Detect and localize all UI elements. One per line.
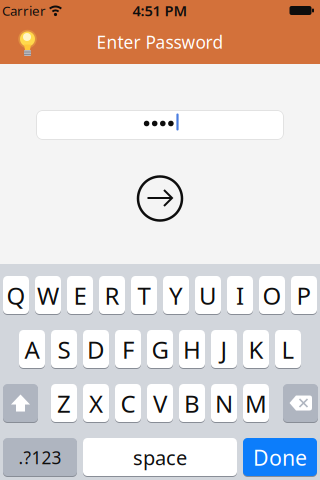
button[interactable]: Delete (283, 383, 318, 422)
button[interactable]: Done (243, 437, 317, 476)
button[interactable]: V (147, 383, 173, 422)
button[interactable]: Hint (12, 29, 42, 59)
button[interactable]: space (83, 437, 237, 476)
staticText: W (37, 280, 59, 311)
button[interactable]: W (35, 275, 61, 314)
button[interactable]: M (243, 383, 269, 422)
button[interactable]: G (147, 329, 173, 368)
button[interactable]: F (115, 329, 141, 368)
staticText: 4:51 PM (132, 1, 187, 20)
staticText: O (262, 280, 281, 311)
staticText: B (184, 388, 200, 419)
staticText: M (245, 388, 267, 419)
staticText: V (153, 388, 167, 419)
button[interactable]: D (83, 329, 109, 368)
staticText: N (215, 388, 233, 419)
staticText: S (57, 334, 70, 365)
button[interactable]: C (115, 383, 141, 422)
staticText: D (87, 334, 105, 365)
button[interactable]: O (259, 275, 285, 314)
button[interactable]: A (19, 329, 45, 368)
staticText: Q (6, 280, 25, 311)
staticText: space (133, 444, 187, 471)
staticText: R (104, 280, 119, 311)
button[interactable]: T (131, 275, 157, 314)
button[interactable]: Z (51, 383, 77, 422)
button[interactable]: Q (3, 275, 29, 314)
button[interactable]: X (83, 383, 109, 422)
button[interactable]: S (51, 329, 77, 368)
button[interactable]: Shift (3, 383, 38, 422)
staticText: Z (57, 388, 71, 419)
button[interactable]: I (227, 275, 253, 314)
button[interactable]: J (211, 329, 237, 368)
staticText: L (281, 334, 294, 365)
button[interactable]: B (179, 383, 205, 422)
staticText: C (120, 388, 135, 419)
staticText: K (248, 334, 263, 365)
staticText: I (236, 280, 244, 311)
staticText: P (296, 280, 311, 311)
button[interactable]: K (243, 329, 269, 368)
staticText: T (137, 280, 150, 311)
staticText: U (199, 280, 217, 311)
button[interactable]: Y (163, 275, 189, 314)
button[interactable]: Password (36, 110, 284, 140)
button[interactable]: P (291, 275, 317, 314)
button[interactable]: E (67, 275, 93, 314)
staticText: X (89, 388, 103, 419)
staticText: Y (169, 280, 183, 311)
staticText: .?123 (18, 446, 61, 469)
button[interactable]: Submit password (137, 175, 183, 221)
button[interactable]: N (211, 383, 237, 422)
button[interactable]: L (275, 329, 301, 368)
button[interactable]: H (179, 329, 205, 368)
staticText: A (24, 334, 39, 365)
staticText: G (151, 334, 168, 365)
staticText: H (183, 334, 201, 365)
button[interactable]: U (195, 275, 221, 314)
staticText: Carrier (2, 2, 46, 19)
button[interactable]: .?123 (3, 437, 77, 476)
staticText: Done (253, 443, 307, 472)
staticText: J (220, 334, 227, 365)
button[interactable]: R (99, 275, 125, 314)
staticText: Enter Password (96, 30, 223, 53)
staticText: F (122, 334, 134, 365)
staticText: E (73, 280, 86, 311)
